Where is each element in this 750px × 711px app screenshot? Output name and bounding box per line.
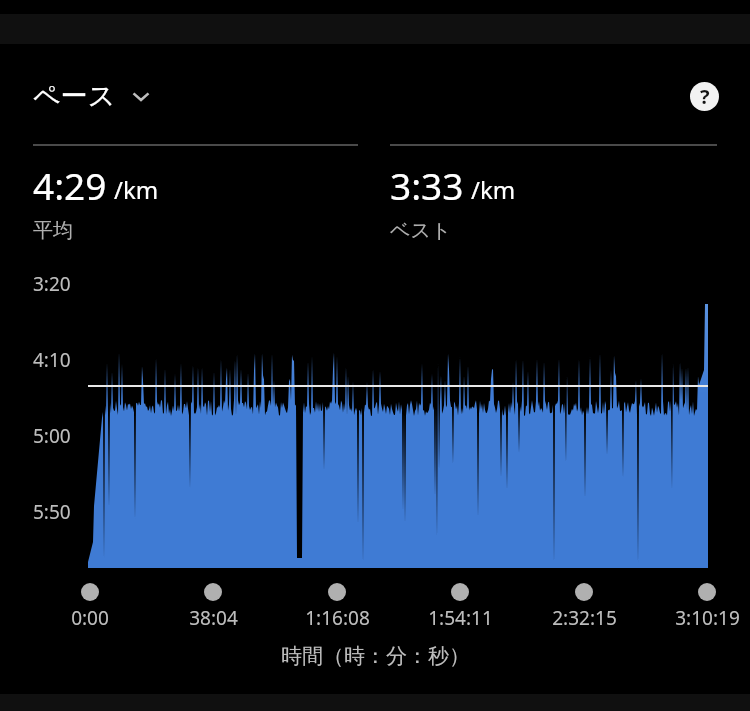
staticText: /km xyxy=(114,173,159,206)
staticText: ペース xyxy=(33,79,116,113)
staticText: 4:10 xyxy=(33,347,71,373)
staticText: 1:16:08 xyxy=(305,605,370,631)
staticText: 2:32:15 xyxy=(552,605,617,631)
staticText: 平均 xyxy=(33,218,73,243)
staticText: 3:33 xyxy=(390,160,464,210)
staticText: 4:29 xyxy=(33,160,107,210)
staticText: 3:10:19 xyxy=(675,605,740,631)
button[interactable]: Help xyxy=(682,74,726,118)
staticText: ベスト xyxy=(390,218,452,243)
staticText: ? xyxy=(700,83,710,110)
staticText: 時間（時：分：秒） xyxy=(281,643,470,669)
staticText: /km xyxy=(471,173,516,206)
staticText: 5:00 xyxy=(33,423,71,449)
staticText: 0:00 xyxy=(71,605,109,631)
button[interactable]: ペース xyxy=(24,73,161,119)
staticText: 38:04 xyxy=(189,605,238,631)
staticText: 3:20 xyxy=(33,271,71,297)
staticText: 1:54:11 xyxy=(428,605,493,631)
staticText: 5:50 xyxy=(33,499,71,525)
